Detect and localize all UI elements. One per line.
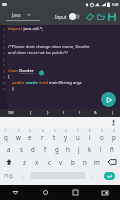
staticText: b xyxy=(71,158,75,166)
button[interactable]: j xyxy=(73,142,84,155)
button[interactable]: ñ xyxy=(106,142,117,155)
staticText: ñ xyxy=(110,145,114,153)
staticText: 8 xyxy=(89,129,91,133)
button[interactable]: f xyxy=(39,142,51,155)
staticText: 4 xyxy=(3,45,5,50)
button[interactable]: v xyxy=(55,155,67,168)
staticText: 6 xyxy=(65,129,67,133)
button[interactable]: Home xyxy=(30,185,60,200)
button[interactable]: 4 xyxy=(36,128,48,142)
button[interactable]: b xyxy=(67,155,79,168)
button[interactable]: l xyxy=(95,142,106,155)
staticText: p xyxy=(112,133,116,141)
button[interactable]: ?1☺ xyxy=(0,168,17,183)
button[interactable]: Run code xyxy=(101,92,116,107)
button[interactable]: TAB xyxy=(0,109,22,117)
button[interactable]: 2 xyxy=(12,128,24,142)
button[interactable]: ) xyxy=(72,109,88,117)
staticText: ?1☺ xyxy=(4,173,14,179)
button[interactable]: ( xyxy=(56,109,72,117)
staticText: m xyxy=(94,158,100,166)
staticText: 1 xyxy=(3,27,5,32)
staticText: c xyxy=(48,158,51,166)
button[interactable]: . xyxy=(87,168,99,183)
staticText: q xyxy=(4,133,8,141)
button[interactable]: g xyxy=(51,142,62,155)
button[interactable]: Clear xyxy=(84,11,95,22)
button[interactable]: d xyxy=(27,142,39,155)
button[interactable]: | xyxy=(104,109,120,117)
button[interactable]: c xyxy=(43,155,55,168)
button[interactable]: 0 xyxy=(108,128,120,142)
staticText: . xyxy=(92,172,94,179)
staticText: 6 xyxy=(3,57,5,62)
staticText: class Dcoder xyxy=(8,68,34,74)
staticText: f xyxy=(44,145,47,153)
button[interactable]: 7 xyxy=(72,128,84,142)
staticText: TAB xyxy=(8,111,14,115)
button[interactable]: Voice input xyxy=(109,118,117,126)
staticText: | xyxy=(111,110,114,116)
staticText: 10 xyxy=(2,81,6,86)
staticText: ) xyxy=(79,110,81,116)
button[interactable]: { xyxy=(22,109,39,117)
staticText: import java.util.*; xyxy=(8,26,44,32)
staticText: t xyxy=(53,133,56,141)
staticText: z xyxy=(23,158,26,166)
button[interactable]: 1 xyxy=(0,128,12,142)
staticText: v xyxy=(59,158,63,166)
button[interactable]: Screenshot xyxy=(90,185,120,200)
button[interactable]: n xyxy=(79,155,91,168)
button[interactable]: 6 xyxy=(60,128,72,142)
button[interactable]: Shift xyxy=(0,155,18,168)
button[interactable]: a xyxy=(3,142,15,155)
staticText: y xyxy=(64,133,68,141)
button[interactable]: 3 xyxy=(24,128,36,142)
button[interactable]: 5 xyxy=(48,128,60,142)
button[interactable]: 8 xyxy=(84,128,96,142)
button[interactable]: & xyxy=(88,109,104,117)
staticText: , xyxy=(22,172,24,179)
button[interactable]: Enter xyxy=(104,172,115,180)
staticText: a xyxy=(7,145,11,153)
staticText: o xyxy=(100,133,104,141)
button[interactable]: Open file xyxy=(95,11,106,22)
button[interactable]: Java xyxy=(6,12,40,21)
staticText: 9 xyxy=(101,129,103,133)
button[interactable]: z xyxy=(18,155,31,168)
button[interactable]: } xyxy=(39,109,56,117)
staticText: { xyxy=(8,86,14,92)
button[interactable]: , xyxy=(17,168,29,183)
button[interactable]: h xyxy=(62,142,73,155)
button[interactable]: k xyxy=(84,142,95,155)
staticText: 9:08 xyxy=(112,3,119,7)
staticText: u xyxy=(76,133,80,141)
staticText: i xyxy=(89,133,91,141)
staticText: h xyxy=(66,145,70,153)
button[interactable]: m xyxy=(91,155,103,168)
staticText: and class must not be public*/ xyxy=(8,50,68,56)
button[interactable]: Recents xyxy=(60,185,90,200)
staticText: 2 xyxy=(3,33,5,38)
staticText: w xyxy=(16,133,21,141)
staticText: r xyxy=(41,133,44,141)
button[interactable]: s xyxy=(15,142,27,155)
button[interactable]: x xyxy=(31,155,43,168)
staticText: & xyxy=(94,110,98,116)
button[interactable]: Backspace xyxy=(103,155,120,168)
staticText: public static void main(String args xyxy=(8,80,82,86)
staticText: g xyxy=(55,145,59,153)
staticText: 5 xyxy=(3,51,5,56)
button[interactable]: Input toggle xyxy=(69,13,80,20)
button[interactable]: 9 xyxy=(96,128,108,142)
staticText: 7 xyxy=(77,129,79,133)
staticText: 11 xyxy=(2,87,6,92)
staticText: k xyxy=(88,145,92,153)
staticText: n xyxy=(83,158,87,166)
staticText: 0 xyxy=(113,129,115,133)
button[interactable]: Back xyxy=(0,185,30,200)
button[interactable]: Save xyxy=(106,11,117,22)
